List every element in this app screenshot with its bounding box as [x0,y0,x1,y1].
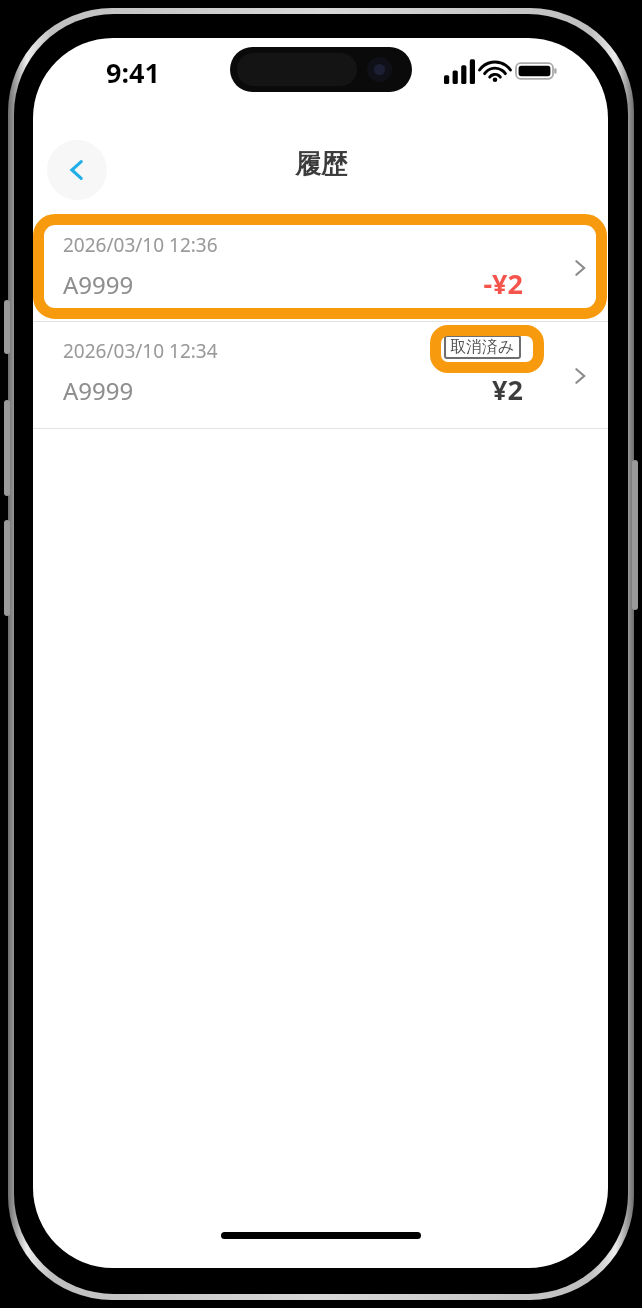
staticText: A9999 [63,374,134,407]
button[interactable]: 2026/03/10 12:34 [33,324,608,428]
staticText: 取消済み [450,337,515,357]
staticText: 2026/03/10 12:34 [63,338,218,364]
staticText: -¥2 [483,265,523,302]
staticText: 履歴 [295,148,347,181]
staticText: 9:41 [106,54,160,91]
staticText: A9999 [63,268,134,301]
button[interactable]: 2026/03/10 12:36 [33,218,608,318]
staticText: ¥2 [492,371,523,408]
button[interactable]: Back [47,140,107,200]
staticText: 2026/03/10 12:36 [63,232,218,258]
